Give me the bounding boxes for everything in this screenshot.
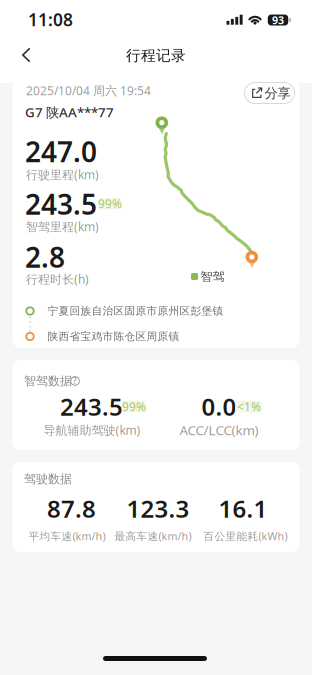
staticText: 2025/10/04 周六 19:54 (26, 82, 151, 98)
staticText: 智驾 (200, 269, 224, 284)
button[interactable]: Back (8, 38, 42, 72)
staticText: ACC/LCC(km) (179, 421, 258, 439)
staticText: <1% (237, 398, 261, 414)
button[interactable]: 分享 (244, 82, 294, 103)
staticText: 行驶里程(km) (26, 166, 99, 182)
staticText: 16.1 (218, 493, 267, 524)
staticText: 247.0 (25, 133, 97, 170)
staticText: 243.5 (25, 185, 97, 223)
staticText: 99% (98, 195, 122, 211)
staticText: 93 (272, 13, 284, 27)
staticText: 智驾里程(km) (26, 218, 99, 234)
staticText: 行程记录 (126, 46, 186, 64)
staticText: 行程时长(h) (26, 271, 89, 287)
staticText: 11:08 (28, 8, 73, 31)
staticText: 陕西省宝鸡市陈仓区周原镇 (47, 330, 179, 343)
staticText: 243.5 (60, 391, 123, 422)
staticText: 87.8 (47, 493, 96, 524)
staticText: 2.8 (25, 238, 65, 276)
staticText: 分享 (264, 85, 290, 101)
staticText: ? (73, 376, 77, 386)
staticText: 123.3 (126, 493, 189, 524)
staticText: 99% (122, 398, 146, 414)
staticText: 最高车速(km/h) (114, 529, 191, 543)
staticText: 驾驶数据 (24, 472, 72, 486)
staticText: 百公里能耗(kWh) (203, 529, 287, 543)
staticText: G7 陕AA***77 (25, 103, 114, 121)
button[interactable]: 智驾数据说明 (68, 374, 82, 388)
staticText: 0.0 (201, 391, 236, 422)
staticText: 平均车速(km/h) (28, 529, 105, 543)
staticText: 宁夏回族自治区固原市原州区彭堡镇 (47, 304, 223, 317)
staticText: 导航辅助驾驶(km) (43, 422, 140, 438)
staticText: 智驾数据 (24, 374, 72, 388)
